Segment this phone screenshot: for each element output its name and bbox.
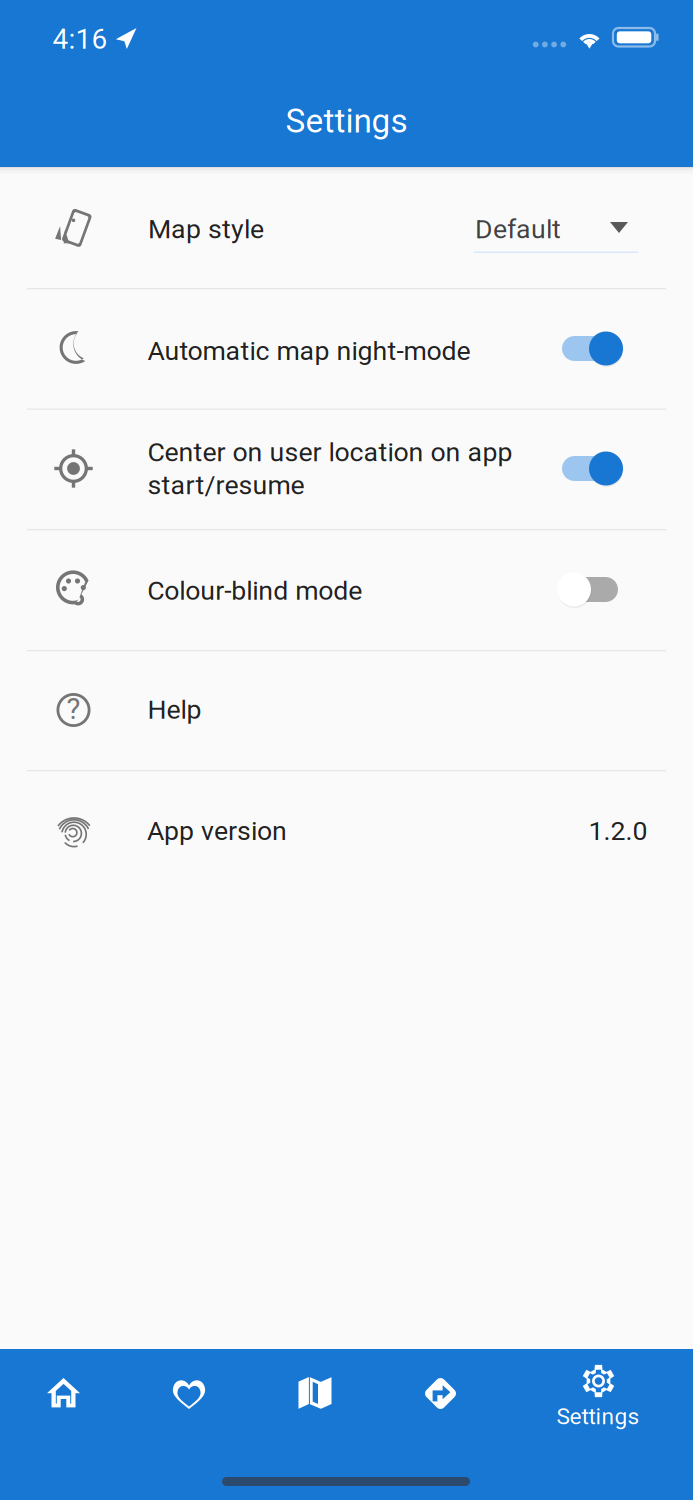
- staticText: Help: [148, 694, 202, 725]
- staticText: ?: [66, 692, 80, 726]
- button[interactable]: Automatic map night-mode: [0, 0, 693, 1500]
- staticText: Colour-blind mode: [147, 575, 362, 606]
- staticText: App version: [147, 815, 287, 847]
- staticText: Map style: [148, 214, 264, 245]
- button[interactable]: Home: [0, 0, 693, 1500]
- button[interactable]: Colour-blind mode: [0, 0, 693, 1500]
- button[interactable]: Favourites: [0, 0, 693, 1500]
- staticText: Default: [475, 214, 561, 245]
- button[interactable]: Map style: [0, 0, 693, 1500]
- staticText: Automatic map night-mode: [147, 335, 470, 366]
- staticText: Settings: [285, 102, 407, 141]
- staticText: Settings: [557, 1403, 640, 1430]
- button[interactable]: Directions: [0, 0, 693, 1500]
- button[interactable]: Map: [0, 0, 693, 1500]
- staticText: 1.2.0: [588, 815, 647, 847]
- button[interactable]: Center on user location on app: [0, 0, 693, 1500]
- button[interactable]: ?: [0, 0, 693, 1500]
- button[interactable]: App version: [0, 0, 693, 1500]
- staticText: start/resume: [147, 470, 304, 501]
- staticText: Center on user location on app: [147, 436, 512, 468]
- button[interactable]: Settings: [0, 0, 693, 1500]
- staticText: 4:16: [52, 23, 107, 56]
